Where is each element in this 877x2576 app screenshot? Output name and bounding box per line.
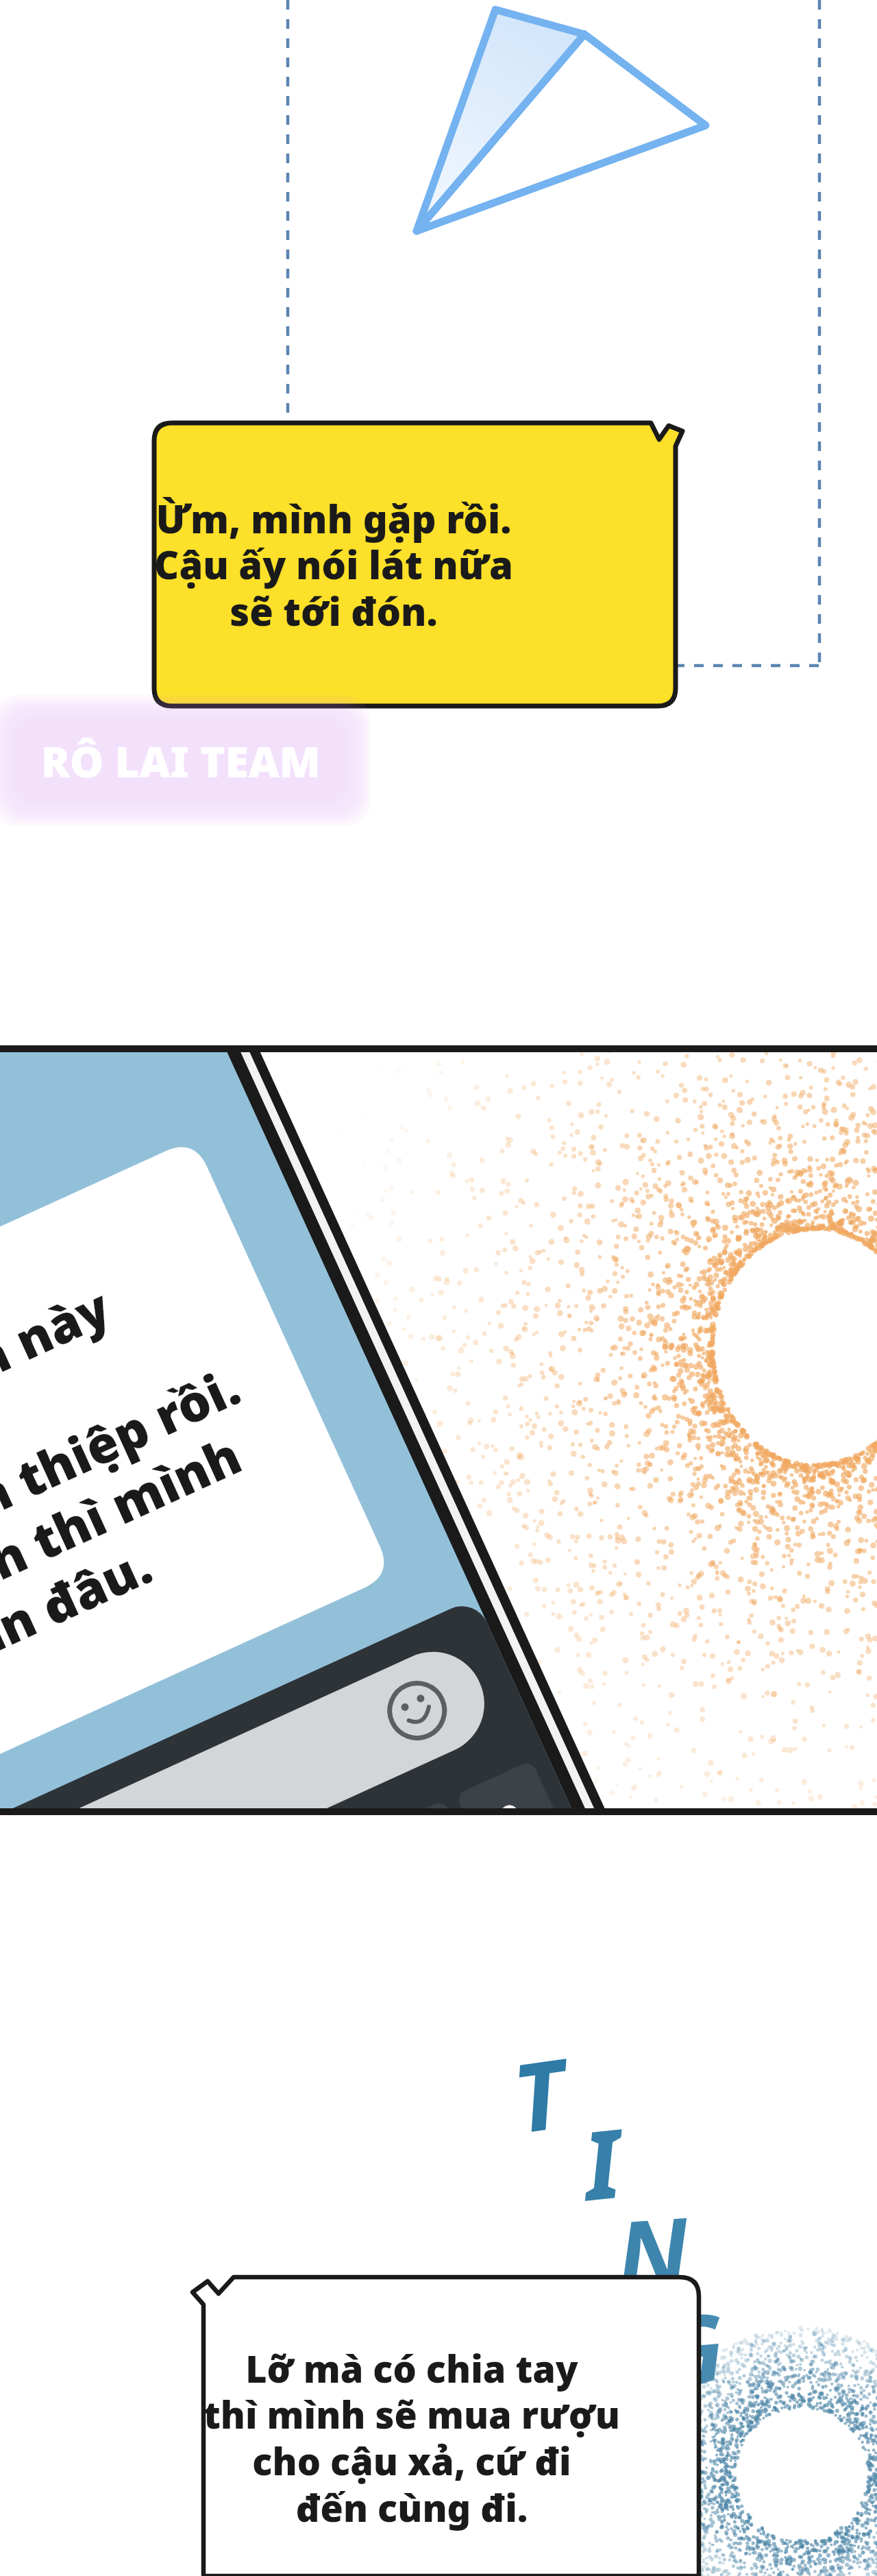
button[interactable]: Comic page	[0, 0, 877, 2576]
other: Comic page	[0, 0, 877, 2576]
